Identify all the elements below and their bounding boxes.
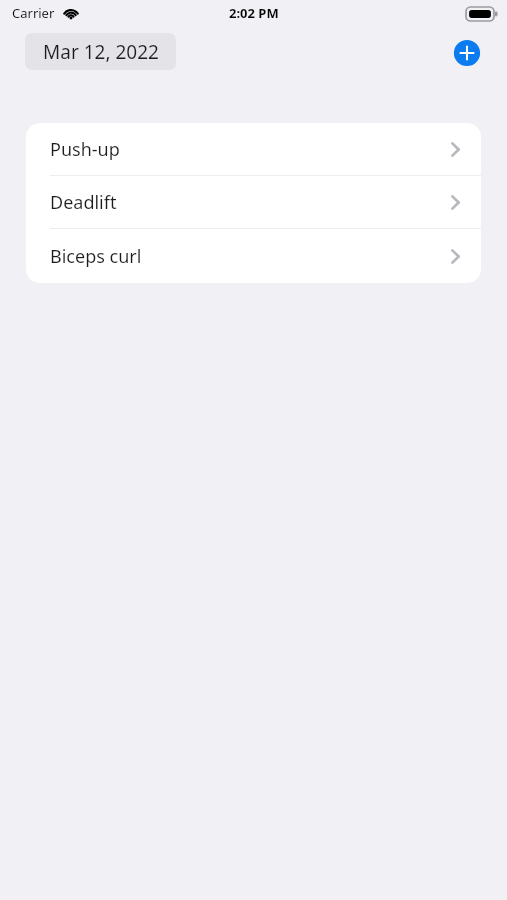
- button[interactable]: Mar 12, 2022: [25, 33, 176, 70]
- button[interactable]: Push-up: [26, 123, 481, 176]
- staticText: Deadlift: [50, 190, 117, 215]
- staticText: Carrier: [12, 4, 55, 22]
- button[interactable]: Deadlift: [26, 176, 481, 229]
- staticText: Push-up: [50, 137, 120, 162]
- button[interactable]: Add exercise: [448, 34, 486, 72]
- staticText: Biceps curl: [50, 244, 142, 269]
- button[interactable]: Biceps curl: [26, 229, 481, 283]
- staticText: Mar 12, 2022: [43, 39, 159, 65]
- staticText: 2:02 PM: [229, 4, 279, 22]
